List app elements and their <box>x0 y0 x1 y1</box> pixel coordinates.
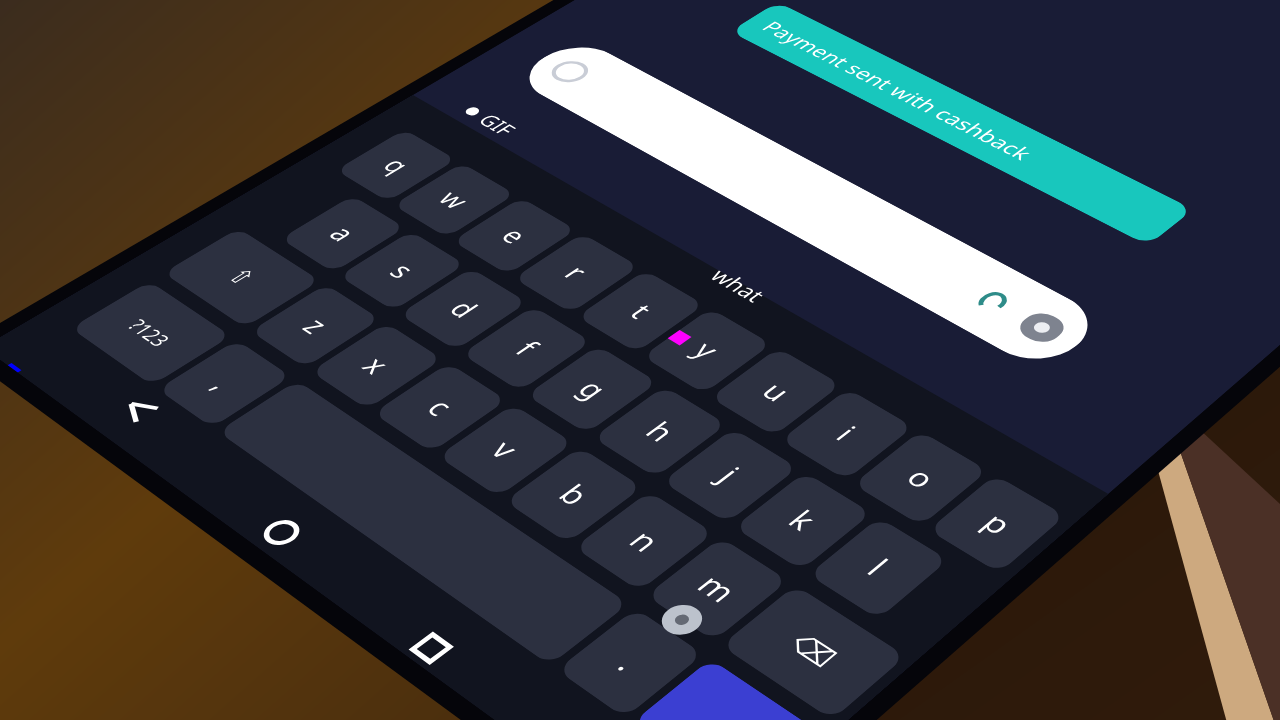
staticText: m <box>687 566 748 611</box>
staticText: ⌫ <box>783 629 844 673</box>
button[interactable]: b <box>504 447 643 543</box>
button[interactable]: . <box>556 608 704 718</box>
staticText: r <box>555 259 598 286</box>
button[interactable]: q <box>335 129 457 202</box>
button[interactable]: u <box>710 348 842 436</box>
staticText: w <box>429 184 479 215</box>
button[interactable]: e <box>452 197 576 275</box>
staticText: z <box>293 311 340 341</box>
staticText: y <box>684 334 730 366</box>
button[interactable]: h <box>592 386 727 478</box>
button[interactable]: j <box>662 428 798 523</box>
button[interactable]: t <box>577 270 705 353</box>
staticText: u <box>752 375 801 408</box>
staticText: d <box>440 293 488 324</box>
staticText: p <box>973 505 1022 542</box>
button[interactable]: o <box>853 431 988 526</box>
staticText: what <box>703 263 774 308</box>
button[interactable]: l <box>808 517 949 619</box>
button[interactable] <box>632 659 822 720</box>
button[interactable]: Payment sent with cashback <box>730 2 1194 246</box>
button[interactable] <box>510 37 1108 373</box>
staticText: k <box>778 502 827 538</box>
button[interactable]: g <box>526 345 658 434</box>
button[interactable]: d <box>399 268 528 350</box>
staticText: ⇧ <box>221 264 262 290</box>
staticText: t <box>621 297 662 325</box>
button[interactable]: z <box>250 284 380 368</box>
button[interactable]: v <box>437 404 574 497</box>
button[interactable]: ⇧ <box>163 228 320 328</box>
staticText: f <box>506 334 549 363</box>
staticText: ?123 <box>122 314 178 351</box>
staticText: b <box>549 476 600 513</box>
button[interactable]: k <box>733 472 872 570</box>
staticText: l <box>857 551 900 584</box>
staticText: e <box>492 221 538 250</box>
staticText: h <box>636 414 685 449</box>
button[interactable]: a <box>280 195 405 273</box>
button[interactable]: x <box>310 323 443 409</box>
staticText: s <box>380 256 425 285</box>
staticText: GIF <box>471 109 524 140</box>
staticText: x <box>352 349 401 381</box>
staticText: q <box>374 152 420 179</box>
button[interactable] <box>217 380 629 665</box>
button[interactable]: i <box>780 388 914 480</box>
button[interactable]: p <box>928 474 1066 573</box>
button[interactable]: c <box>373 363 507 452</box>
button[interactable]: ⌫ <box>721 585 906 720</box>
button[interactable]: r <box>513 233 640 313</box>
button[interactable]: f <box>461 306 592 391</box>
button[interactable]: s <box>339 231 465 311</box>
staticText: o <box>897 460 946 496</box>
staticText: , <box>202 369 247 397</box>
button[interactable]: Back <box>110 389 169 428</box>
staticText: . <box>607 644 653 680</box>
staticText: i <box>827 419 867 448</box>
staticText: v <box>481 433 530 467</box>
staticText: Payment sent with cashback <box>755 17 1040 165</box>
button[interactable]: w <box>393 163 516 238</box>
button[interactable]: Home <box>251 511 312 554</box>
button[interactable]: y <box>642 308 772 394</box>
staticText: c <box>417 391 464 423</box>
button[interactable]: ?123 <box>70 281 231 385</box>
staticText: n <box>619 522 671 560</box>
button[interactable]: Recents <box>399 625 463 672</box>
staticText: g <box>568 372 617 406</box>
staticText: j <box>709 459 751 490</box>
button[interactable]: m <box>646 537 789 641</box>
button[interactable]: , <box>157 340 291 428</box>
staticText: a <box>320 219 366 247</box>
button[interactable]: n <box>574 491 714 591</box>
